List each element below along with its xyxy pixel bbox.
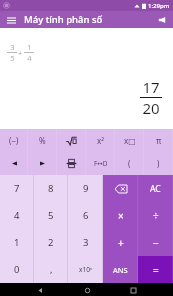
button[interactable]: x10ˣ: [68, 256, 103, 283]
staticText: ×: [118, 209, 124, 223]
button[interactable]: 6: [68, 202, 103, 229]
button[interactable]: 4: [0, 202, 34, 229]
staticText: (: [128, 158, 131, 169]
button[interactable]: Minus: [138, 229, 173, 256]
button[interactable]: x²: [86, 129, 115, 152]
button[interactable]: Home: [81, 284, 93, 296]
staticText: 8: [48, 182, 54, 195]
staticText: π: [156, 135, 162, 146]
staticText: 3: [10, 42, 15, 52]
button[interactable]: Multiply: [103, 202, 138, 229]
button[interactable]: 2: [34, 229, 68, 256]
button[interactable]: ,: [34, 256, 68, 283]
button[interactable]: 8: [34, 175, 68, 202]
button[interactable]: AC: [138, 175, 173, 202]
staticText: 1:29pm: [148, 2, 170, 10]
staticText: +: [118, 236, 124, 250]
button[interactable]: 1: [0, 229, 34, 256]
staticText: 6: [83, 209, 89, 222]
button[interactable]: Recents: [127, 284, 139, 296]
staticText: 2: [48, 236, 54, 249]
staticText: 3: [83, 236, 89, 249]
staticText: AC: [150, 183, 161, 195]
button[interactable]: Menu: [4, 13, 18, 27]
staticText: %: [39, 135, 46, 146]
staticText: +: [18, 48, 23, 58]
staticText: 5: [10, 53, 15, 63]
staticText: (−): [9, 135, 19, 146]
staticText: −: [153, 236, 159, 250]
button[interactable]: (−): [0, 129, 28, 152]
button[interactable]: 5: [34, 202, 68, 229]
button[interactable]: π: [144, 129, 173, 152]
staticText: 0: [14, 263, 20, 276]
staticText: F↔D: [94, 159, 108, 168]
button[interactable]: Right: [28, 152, 57, 175]
button[interactable]: Back: [34, 284, 46, 296]
staticText: x□: [124, 135, 136, 146]
button[interactable]: 0: [0, 256, 34, 283]
staticText: x²: [97, 135, 105, 146]
staticText: 7: [14, 182, 20, 195]
staticText: =: [153, 263, 159, 277]
staticText: ): [157, 158, 160, 169]
staticText: x10ˣ: [79, 265, 93, 274]
button[interactable]: Sound: [155, 13, 169, 27]
button[interactable]: Delete: [103, 175, 138, 202]
button[interactable]: F↔D: [86, 152, 115, 175]
staticText: 1: [14, 236, 20, 249]
button[interactable]: x□: [115, 129, 144, 152]
staticText: ÷: [153, 209, 159, 223]
staticText: 20: [142, 98, 160, 118]
button[interactable]: ANS: [103, 256, 138, 283]
button[interactable]: Divide: [138, 202, 173, 229]
button[interactable]: (: [115, 152, 144, 175]
staticText: 17: [142, 77, 160, 97]
button[interactable]: Plus: [103, 229, 138, 256]
staticText: Máy tính phân số: [24, 13, 103, 26]
staticText: ,: [50, 263, 53, 276]
button[interactable]: %: [28, 129, 57, 152]
staticText: 1: [27, 42, 32, 52]
button[interactable]: ): [144, 152, 173, 175]
button[interactable]: 7: [0, 175, 34, 202]
staticText: 4: [14, 209, 20, 222]
button[interactable]: Equals: [138, 256, 173, 283]
button[interactable]: 9: [68, 175, 103, 202]
button[interactable]: Left: [0, 152, 28, 175]
staticText: ANS: [113, 265, 128, 275]
button[interactable]: Fraction: [57, 152, 86, 175]
staticText: 5: [48, 209, 54, 222]
staticText: 4: [27, 53, 32, 63]
button[interactable]: 3: [68, 229, 103, 256]
staticText: 9: [83, 182, 89, 195]
button[interactable]: Square root: [57, 129, 86, 152]
